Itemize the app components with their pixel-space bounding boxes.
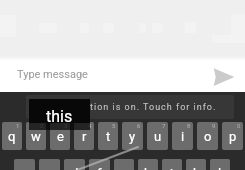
button[interactable]: q — [2, 122, 22, 150]
button[interactable]: w — [26, 122, 46, 150]
staticText: 3 — [64, 122, 68, 129]
button[interactable]: s — [39, 159, 60, 170]
staticText: this — [46, 107, 73, 126]
button[interactable]: f — [89, 159, 110, 170]
staticText: w — [31, 129, 41, 144]
staticText: e — [57, 129, 64, 144]
staticText: 1 — [16, 122, 20, 129]
button[interactable]: r — [74, 122, 94, 150]
staticText: 2 — [40, 122, 44, 129]
staticText: t — [106, 129, 111, 144]
button[interactable]: j — [162, 159, 182, 170]
button[interactable]: i — [172, 122, 193, 150]
button[interactable]: e — [50, 122, 70, 150]
button[interactable]: y — [122, 122, 143, 150]
staticText: j — [170, 166, 174, 170]
staticText: p — [229, 129, 237, 144]
staticText: 9 — [212, 122, 216, 129]
button[interactable]: k — [186, 159, 206, 170]
staticText: o — [204, 129, 212, 144]
button[interactable]: a — [14, 159, 35, 170]
button[interactable]: d — [64, 159, 85, 170]
button[interactable]: t — [98, 122, 118, 150]
staticText: k — [193, 166, 200, 170]
staticText: d — [71, 166, 79, 170]
button[interactable]: o — [197, 122, 218, 150]
staticText: 6 — [137, 122, 141, 129]
button[interactable]: p — [222, 122, 243, 150]
staticText: 4 — [88, 122, 92, 129]
button[interactable]: l — [210, 159, 230, 170]
staticText: 5 — [112, 122, 116, 129]
staticText: i — [181, 129, 185, 144]
staticText: y — [129, 129, 136, 144]
staticText: q — [8, 129, 16, 144]
button[interactable]: g — [114, 159, 134, 170]
staticText: u — [154, 129, 162, 144]
staticText: l — [218, 166, 222, 170]
button[interactable]: h — [138, 159, 158, 170]
staticText: r — [82, 129, 87, 144]
button[interactable]: Send — [211, 64, 237, 90]
staticText: Type message — [17, 68, 88, 81]
staticText: 7 — [162, 122, 166, 129]
staticText: f — [97, 166, 102, 170]
button[interactable]: u — [147, 122, 168, 150]
staticText: 8 — [187, 122, 191, 129]
staticText: Personalisation is on. Touch for info. — [32, 102, 217, 113]
staticText: 0 — [237, 122, 241, 129]
staticText: h — [144, 166, 152, 170]
button[interactable]: Personalisation is on. Touch for info. — [26, 95, 234, 119]
